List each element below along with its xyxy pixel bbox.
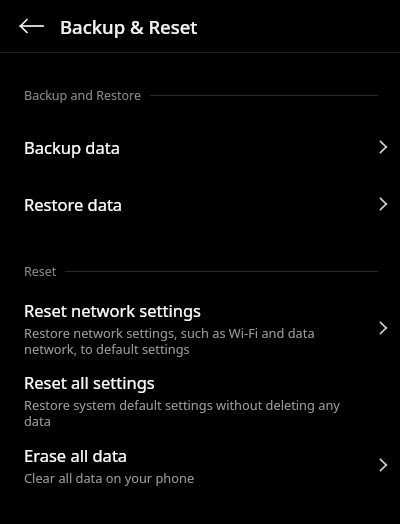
- staticText: Restore system default settings without …: [24, 396, 358, 429]
- button[interactable]: Restore data: [0, 187, 400, 221]
- staticText: Reset: [24, 263, 57, 280]
- staticText: Erase all data: [24, 444, 128, 466]
- staticText: Reset network settings: [24, 299, 201, 321]
- button[interactable]: Reset network settings: [0, 299, 400, 357]
- staticText: Reset all settings: [24, 371, 155, 393]
- button[interactable]: Backup data: [0, 130, 400, 164]
- button[interactable]: Reset all settings: [0, 371, 400, 429]
- staticText: Backup & Reset: [60, 14, 198, 39]
- button[interactable]: Erase all data: [0, 444, 400, 486]
- staticText: Clear all data on your phone: [24, 469, 195, 486]
- staticText: Backup and Restore: [24, 87, 142, 104]
- staticText: Restore data: [24, 193, 123, 215]
- button[interactable]: Back: [13, 8, 49, 44]
- staticText: Restore network settings, such as Wi-Fi …: [24, 324, 358, 357]
- staticText: Backup data: [24, 136, 120, 158]
